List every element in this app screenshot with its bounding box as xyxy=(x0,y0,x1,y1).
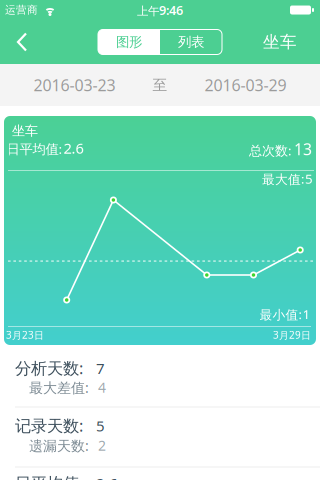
staticText: 列表 xyxy=(178,33,204,50)
button[interactable]: 坐车 xyxy=(263,20,320,64)
staticText: 2016-03-23 xyxy=(33,74,115,96)
staticText: 1 xyxy=(302,305,310,323)
button[interactable]: 列表 xyxy=(160,29,222,54)
staticText: 2 xyxy=(98,436,106,455)
staticText: 13 xyxy=(294,138,312,160)
button[interactable]: 返回 xyxy=(0,20,36,63)
staticText: 4 xyxy=(98,378,106,397)
staticText: 图形 xyxy=(116,33,142,50)
button[interactable]: 图形 xyxy=(98,29,160,54)
staticText: 9:46 xyxy=(159,1,183,19)
staticText: 7 xyxy=(96,358,105,378)
staticText: 最大差值: xyxy=(29,378,89,397)
staticText: 记录天数: xyxy=(15,414,83,437)
staticText: 最小值: xyxy=(259,306,301,323)
staticText: 最大值: xyxy=(262,170,304,188)
staticText: 分析天数: xyxy=(15,357,83,379)
staticText: 上午 xyxy=(137,4,159,18)
staticText: 日平均值: xyxy=(6,140,62,158)
staticText: 遗漏天数: xyxy=(29,436,89,455)
staticText: 3月23日 xyxy=(6,328,44,342)
staticText: 日平均值: xyxy=(15,472,83,480)
staticText: 2.6 xyxy=(63,138,83,158)
staticText: 总次数: xyxy=(249,141,292,159)
staticText: 2016-03-29 xyxy=(204,74,286,96)
staticText: 5 xyxy=(305,169,313,188)
button[interactable]: 2016-03-23 xyxy=(33,74,115,96)
staticText: 坐车 xyxy=(263,32,297,52)
staticText: 运营商 xyxy=(5,3,38,17)
staticText: 坐车 xyxy=(12,123,38,139)
staticText: 2.6 xyxy=(96,473,118,480)
staticText: 3月29日 xyxy=(273,328,311,342)
staticText: 至 xyxy=(152,76,167,94)
staticText: 5 xyxy=(96,415,105,436)
button[interactable]: 2016-03-29 xyxy=(204,74,286,96)
